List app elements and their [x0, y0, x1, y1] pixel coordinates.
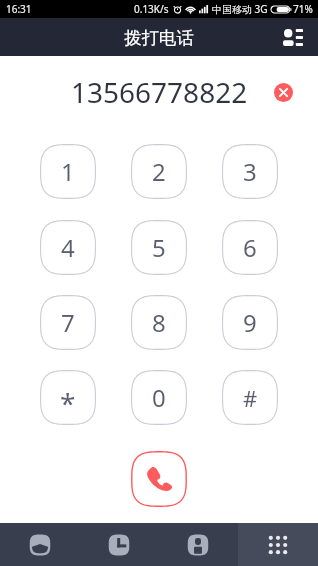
staticText: 16:31: [6, 2, 32, 16]
button[interactable]: Contacts: [158, 523, 238, 566]
button[interactable]: 2: [131, 144, 187, 199]
staticText: 9: [243, 306, 257, 339]
staticText: 中国移动 3G: [212, 2, 268, 16]
button[interactable]: 3: [222, 144, 278, 199]
button[interactable]: Messages: [0, 523, 79, 566]
button[interactable]: Dialpad: [238, 523, 318, 566]
staticText: 6: [243, 231, 257, 264]
staticText: *: [60, 384, 76, 422]
button[interactable]: Recents: [79, 523, 158, 566]
staticText: 0: [152, 381, 166, 414]
staticText: 4: [61, 231, 75, 264]
button[interactable]: 6: [222, 220, 278, 275]
staticText: 1: [61, 155, 75, 188]
staticText: 13566778822: [71, 73, 248, 111]
button[interactable]: Delete: [269, 78, 297, 106]
button[interactable]: 4: [40, 220, 96, 275]
staticText: 5: [152, 231, 166, 264]
button[interactable]: Call: [131, 451, 187, 507]
staticText: 71%: [293, 2, 313, 16]
button[interactable]: 9: [222, 295, 278, 350]
staticText: #: [243, 383, 258, 413]
staticText: 8: [152, 306, 166, 339]
button[interactable]: 5: [131, 220, 187, 275]
button[interactable]: 0: [131, 370, 187, 425]
staticText: 2: [152, 155, 166, 188]
staticText: 拨打电话: [124, 27, 194, 49]
staticText: 7: [61, 306, 75, 339]
staticText: 3: [243, 155, 257, 188]
button[interactable]: *: [40, 370, 96, 425]
button[interactable]: 1: [40, 144, 96, 199]
button[interactable]: Contacts: [280, 24, 306, 50]
button[interactable]: 8: [131, 295, 187, 350]
button[interactable]: #: [222, 370, 278, 425]
staticText: 0.13K/s: [134, 2, 169, 16]
button[interactable]: 7: [40, 295, 96, 350]
